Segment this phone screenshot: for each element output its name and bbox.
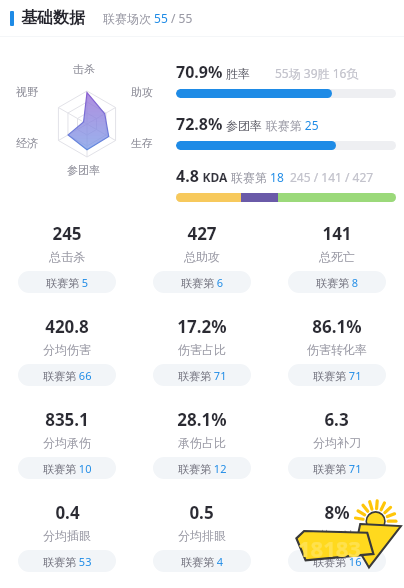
staticText: 联赛第 53 [43,554,92,569]
staticText: 6.3 [324,408,349,431]
staticText: 总死亡 [319,249,355,264]
staticText: 835.1 [45,408,89,431]
staticText: 141 [322,222,352,245]
staticText: 基础数据 [21,8,85,28]
button[interactable]: 基础数据 [0,0,404,36]
staticText: 承伤占比 [178,435,226,450]
button[interactable]: 8% [269,501,404,572]
staticText: 4.8 KDA 联赛第 18 245 / 141 / 427 [176,165,396,187]
staticText: 分均伤害 [43,342,91,357]
button[interactable]: 141 [269,222,404,293]
staticText: 联赛第 5 [46,275,89,290]
staticText: 联赛第 12 [178,461,227,476]
staticText: 分均插眼 [43,528,91,543]
staticText: 总助攻 [184,249,220,264]
button[interactable]: 17.2% [134,315,269,386]
staticText: 助攻 [131,85,153,99]
staticText: 17.2% [177,315,227,338]
staticText: 联赛第 4 [181,554,224,569]
button[interactable]: 6.3 [269,408,404,479]
staticText: 总击杀 [49,249,85,264]
staticText: 70.9% 胜率 55场 39胜 16负 [176,61,396,83]
staticText: 分均补刀 [313,435,361,450]
staticText: 联赛第 8 [316,275,359,290]
button[interactable]: 420.8 [0,315,134,386]
button[interactable]: 427 [134,222,269,293]
staticText: 生存 [131,136,153,150]
staticText: 参团率 [67,163,100,177]
staticText: 28.1% [177,408,227,431]
staticText: 伤害占比 [178,342,226,357]
staticText: 420.8 [45,315,89,338]
staticText: 0.4 [55,501,80,524]
button[interactable]: 28.1% [134,408,269,479]
staticText: 英雄池 [319,528,355,543]
button[interactable]: 86.1% [269,315,404,386]
staticText: 联赛第 16 [313,554,362,569]
staticText: 18183 [298,533,361,563]
button[interactable]: 0.4 [0,501,134,572]
staticText: 联赛第 71 [178,368,227,383]
staticText: 8% [324,501,350,524]
staticText: 视野 [16,85,38,99]
staticText: 经济 [16,136,38,150]
staticText: 伤害转化率 [307,342,367,357]
staticText: 86.1% [312,315,362,338]
staticText: 击杀 [73,62,95,76]
staticText: 联赛第 71 [313,368,362,383]
staticText: 联赛第 71 [313,461,362,476]
staticText: 72.8% 参团率 联赛第 25 [176,113,396,135]
staticText: 联赛第 10 [43,461,92,476]
staticText: 联赛第 66 [43,368,92,383]
staticText: 分均排眼 [178,528,226,543]
staticText: 427 [187,222,217,245]
button[interactable]: 0.5 [134,501,269,572]
staticText: 联赛第 6 [181,275,224,290]
staticText: 分均承伤 [43,435,91,450]
other: 18183 logo [292,503,402,573]
staticText: 0.5 [189,501,214,524]
staticText: 联赛场次 55 / 55 [103,10,193,26]
button[interactable]: 835.1 [0,408,134,479]
button[interactable]: 245 [0,222,134,293]
staticText: 245 [52,222,82,245]
